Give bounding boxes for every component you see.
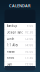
staticText: Gym <box>6 63 11 66</box>
staticText: Lunch <box>6 37 14 41</box>
staticText: Retro <box>6 56 14 60</box>
staticText: 19:00 <box>24 63 33 66</box>
button[interactable]: Retro <box>4 55 35 61</box>
button[interactable]: 1:1 Alex <box>4 42 35 48</box>
staticText: 1:1 Alex <box>6 43 17 47</box>
button[interactable]: Design sync <box>4 29 35 35</box>
staticText: CALENDAR <box>9 3 31 8</box>
staticText: 9:00 <box>26 24 33 28</box>
button[interactable]: Lunch <box>4 36 35 42</box>
staticText: 12:00 <box>24 37 33 41</box>
button[interactable]: Gym <box>4 61 35 67</box>
button[interactable]: Review <box>4 49 35 55</box>
staticText: Review <box>6 50 14 53</box>
staticText: 14:00 <box>24 43 33 47</box>
staticText: 10:30 <box>24 31 33 34</box>
staticText: 16:00 <box>24 50 33 53</box>
button[interactable]: Standup <box>4 23 35 29</box>
staticText: 17:30 <box>24 56 33 60</box>
staticText: Standup <box>6 24 17 28</box>
staticText: Design sync <box>6 31 22 34</box>
